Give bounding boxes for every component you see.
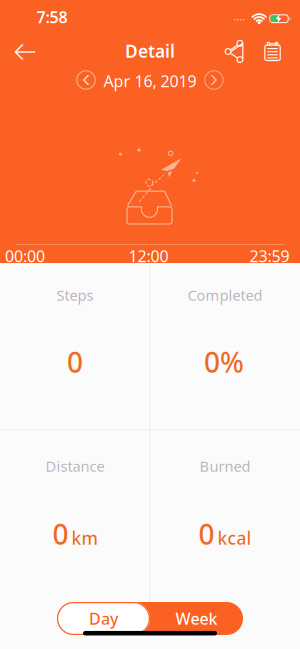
staticText: Distance xyxy=(45,456,104,476)
button[interactable]: Share xyxy=(218,34,250,69)
staticText: 0 xyxy=(67,343,83,381)
button[interactable]: Back xyxy=(6,36,43,68)
staticText: 23:59 xyxy=(249,245,289,267)
staticText: Steps xyxy=(56,285,93,305)
staticText: kcal xyxy=(217,527,251,550)
staticText: Day xyxy=(89,608,118,629)
staticText: km xyxy=(71,527,97,550)
staticText: Apr 16, 2019 xyxy=(103,70,196,92)
staticText: Detail xyxy=(125,39,175,62)
button[interactable]: Calendar xyxy=(256,36,288,67)
staticText: 00:00 xyxy=(5,245,45,267)
staticText: Completed xyxy=(187,285,262,305)
staticText: 0 xyxy=(198,515,214,553)
staticText: 0 xyxy=(52,515,68,553)
button[interactable]: Week xyxy=(150,602,243,635)
staticText: Burned xyxy=(199,456,250,476)
staticText: 7:58 xyxy=(36,6,67,28)
button[interactable]: Next day xyxy=(200,66,228,94)
staticText: Week xyxy=(175,608,217,629)
button[interactable]: Previous day xyxy=(72,66,100,94)
button[interactable]: Day xyxy=(57,602,150,635)
staticText: 0% xyxy=(204,343,244,381)
staticText: 12:00 xyxy=(128,245,168,267)
